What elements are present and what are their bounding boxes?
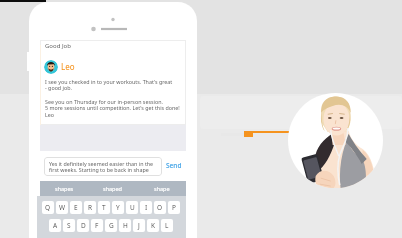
- staticText: J: [138, 221, 140, 230]
- button[interactable]: S: [63, 219, 75, 232]
- staticText: U: [130, 203, 135, 212]
- staticText: P: [172, 203, 176, 212]
- staticText: E: [74, 203, 78, 212]
- staticText: Send: [166, 161, 182, 170]
- button[interactable]: G: [105, 219, 117, 232]
- button[interactable]: R: [84, 201, 96, 214]
- button[interactable]: H: [119, 219, 131, 232]
- staticText: Y: [116, 203, 120, 212]
- staticText: D: [81, 221, 86, 230]
- button[interactable]: Y: [112, 201, 124, 214]
- button[interactable]: J: [133, 219, 145, 232]
- button[interactable]: L: [161, 219, 173, 232]
- button[interactable]: U: [126, 201, 138, 214]
- staticText: A: [53, 221, 58, 230]
- staticText: G: [109, 221, 114, 230]
- staticText: Good Job: [45, 42, 71, 50]
- staticText: O: [157, 203, 163, 212]
- staticText: F: [95, 221, 99, 230]
- staticText: shape: [154, 185, 170, 192]
- staticText: T: [102, 203, 106, 212]
- button[interactable]: Q: [42, 201, 54, 214]
- button[interactable]: E: [70, 201, 82, 214]
- staticText: See you on Thursday for our in-person se…: [45, 98, 180, 119]
- staticText: I: [145, 203, 148, 212]
- button[interactable]: shape: [137, 181, 186, 196]
- button[interactable]: T: [98, 201, 110, 214]
- button[interactable]: Send: [166, 161, 182, 170]
- staticText: shaped: [103, 185, 122, 192]
- button[interactable]: F: [91, 219, 103, 232]
- button[interactable]: K: [147, 219, 159, 232]
- button[interactable]: O: [154, 201, 166, 214]
- staticText: Leo: [61, 61, 75, 72]
- staticText: W: [59, 203, 66, 212]
- staticText: Q: [45, 203, 51, 212]
- button[interactable]: I: [140, 201, 152, 214]
- button[interactable]: shaped: [88, 181, 137, 196]
- staticText: K: [151, 221, 156, 230]
- staticText: R: [88, 203, 93, 212]
- button[interactable]: D: [77, 219, 89, 232]
- staticText: L: [165, 221, 169, 230]
- button[interactable]: A: [49, 219, 61, 232]
- staticText: shapes: [55, 185, 74, 192]
- button[interactable]: W: [56, 201, 68, 214]
- staticText: Yes it definitely seemed easier than in …: [49, 160, 154, 174]
- staticText: S: [67, 221, 71, 230]
- staticText: I see you checked in to your workouts. T…: [45, 78, 173, 92]
- staticText: H: [123, 221, 128, 230]
- button[interactable]: Yes it definitely seemed easier than in …: [44, 157, 162, 176]
- other: Trainer photo: [288, 93, 383, 188]
- button[interactable]: shapes: [40, 181, 88, 196]
- button[interactable]: P: [168, 201, 180, 214]
